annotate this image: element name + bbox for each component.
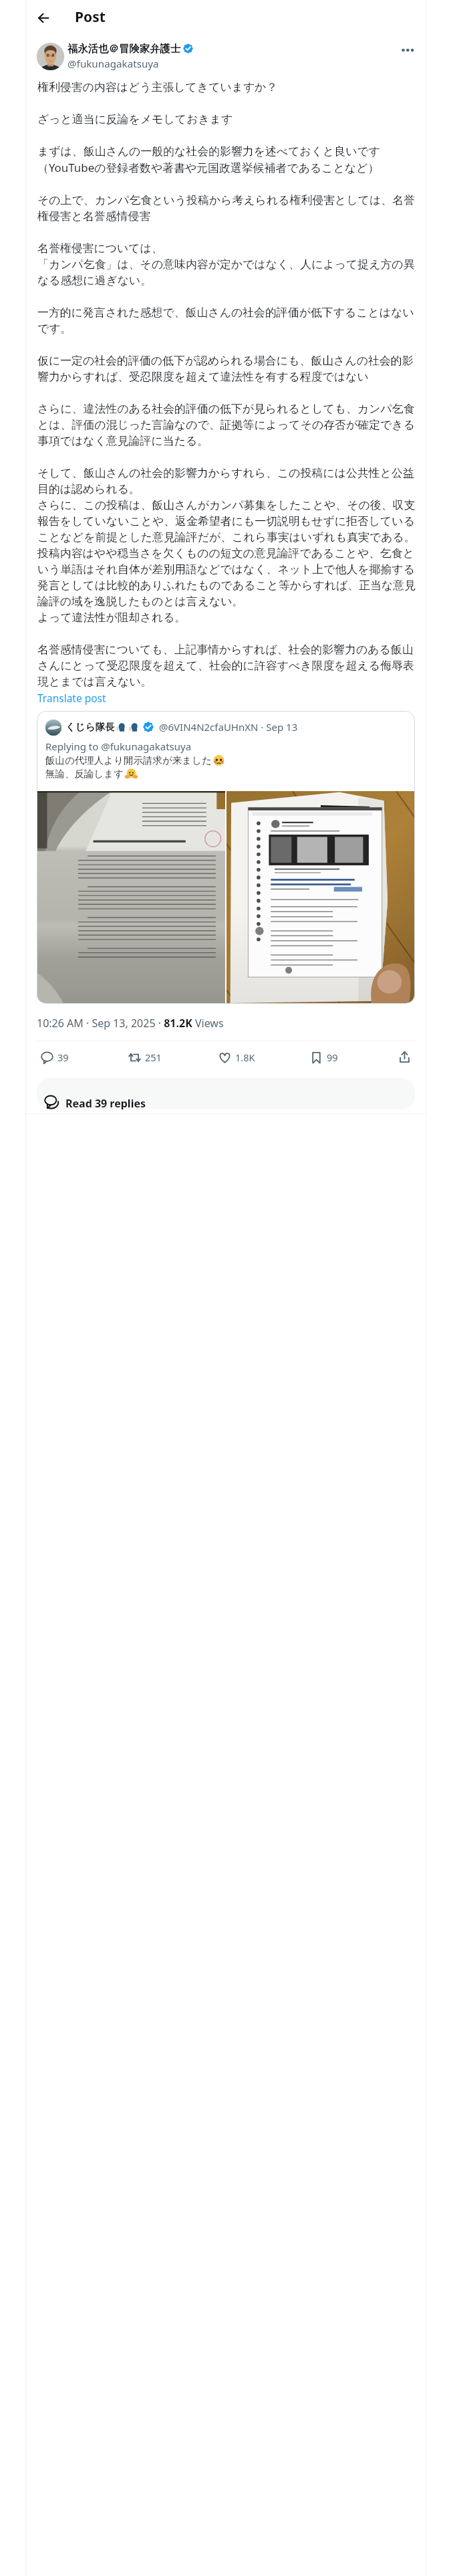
- staticText: くじら隊長: [65, 721, 115, 733]
- button[interactable]: Read 39 replies: [37, 1078, 415, 1109]
- button[interactable]: Translate post: [37, 691, 107, 705]
- staticText: 福永活也＠冒険家弁護士: [67, 42, 181, 55]
- button[interactable]: Share: [394, 1047, 415, 1067]
- staticText: 251: [145, 1051, 162, 1064]
- staticText: Replying to @fukunagakatsuya: [45, 740, 192, 753]
- staticText: @6VIN4N2cfaUHnXN · Sep 13: [159, 720, 298, 734]
- button[interactable]: More options: [395, 37, 422, 64]
- staticText: 99: [327, 1051, 338, 1064]
- button[interactable]: Reply: [37, 1047, 73, 1068]
- staticText: 権利侵害の内容はどう主張してきていますか？ ざっと適当に反論をメモしておきます …: [37, 79, 421, 689]
- staticText: 10:26 AM · Sep 13, 2025 · 81.2K Views: [37, 1016, 224, 1031]
- button[interactable]: Bookmark: [306, 1047, 342, 1068]
- button[interactable]: くじら隊長: [37, 711, 415, 1004]
- staticText: 39: [57, 1051, 69, 1064]
- button[interactable]: Back: [30, 5, 57, 31]
- button[interactable]: Repost: [124, 1047, 166, 1068]
- staticText: 飯山の代理人より開示請求が来ました 無論、反論します: [45, 754, 212, 780]
- staticText: Read 39 replies: [65, 1096, 146, 1109]
- staticText: @fukunagakatsuya: [67, 57, 159, 71]
- staticText: 1.8K: [235, 1051, 255, 1064]
- button[interactable]: Like: [214, 1047, 259, 1068]
- staticText: Translate post: [37, 691, 106, 705]
- button[interactable]: Profile photo: [37, 43, 64, 70]
- staticText: Post: [75, 7, 106, 27]
